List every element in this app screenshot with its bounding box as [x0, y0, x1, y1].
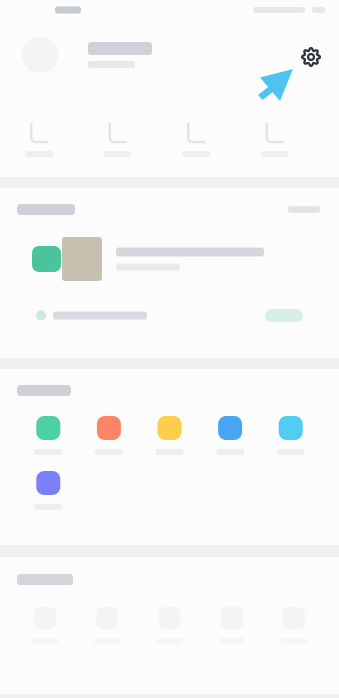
button[interactable]	[157, 122, 235, 157]
button[interactable]	[14, 607, 76, 644]
button[interactable]	[263, 607, 325, 644]
button[interactable]	[18, 471, 79, 510]
button[interactable]	[79, 416, 139, 455]
button[interactable]	[18, 416, 79, 455]
button[interactable]	[139, 416, 200, 455]
button[interactable]	[76, 607, 138, 644]
button[interactable]: Settings	[294, 40, 328, 74]
button[interactable]	[235, 122, 314, 157]
button[interactable]	[0, 122, 78, 157]
button[interactable]	[138, 607, 201, 644]
button[interactable]	[288, 206, 320, 213]
button[interactable]	[0, 309, 339, 322]
button[interactable]	[78, 122, 157, 157]
button[interactable]	[201, 607, 263, 644]
button[interactable]	[260, 416, 321, 455]
button[interactable]	[200, 416, 260, 455]
button[interactable]	[0, 237, 339, 281]
